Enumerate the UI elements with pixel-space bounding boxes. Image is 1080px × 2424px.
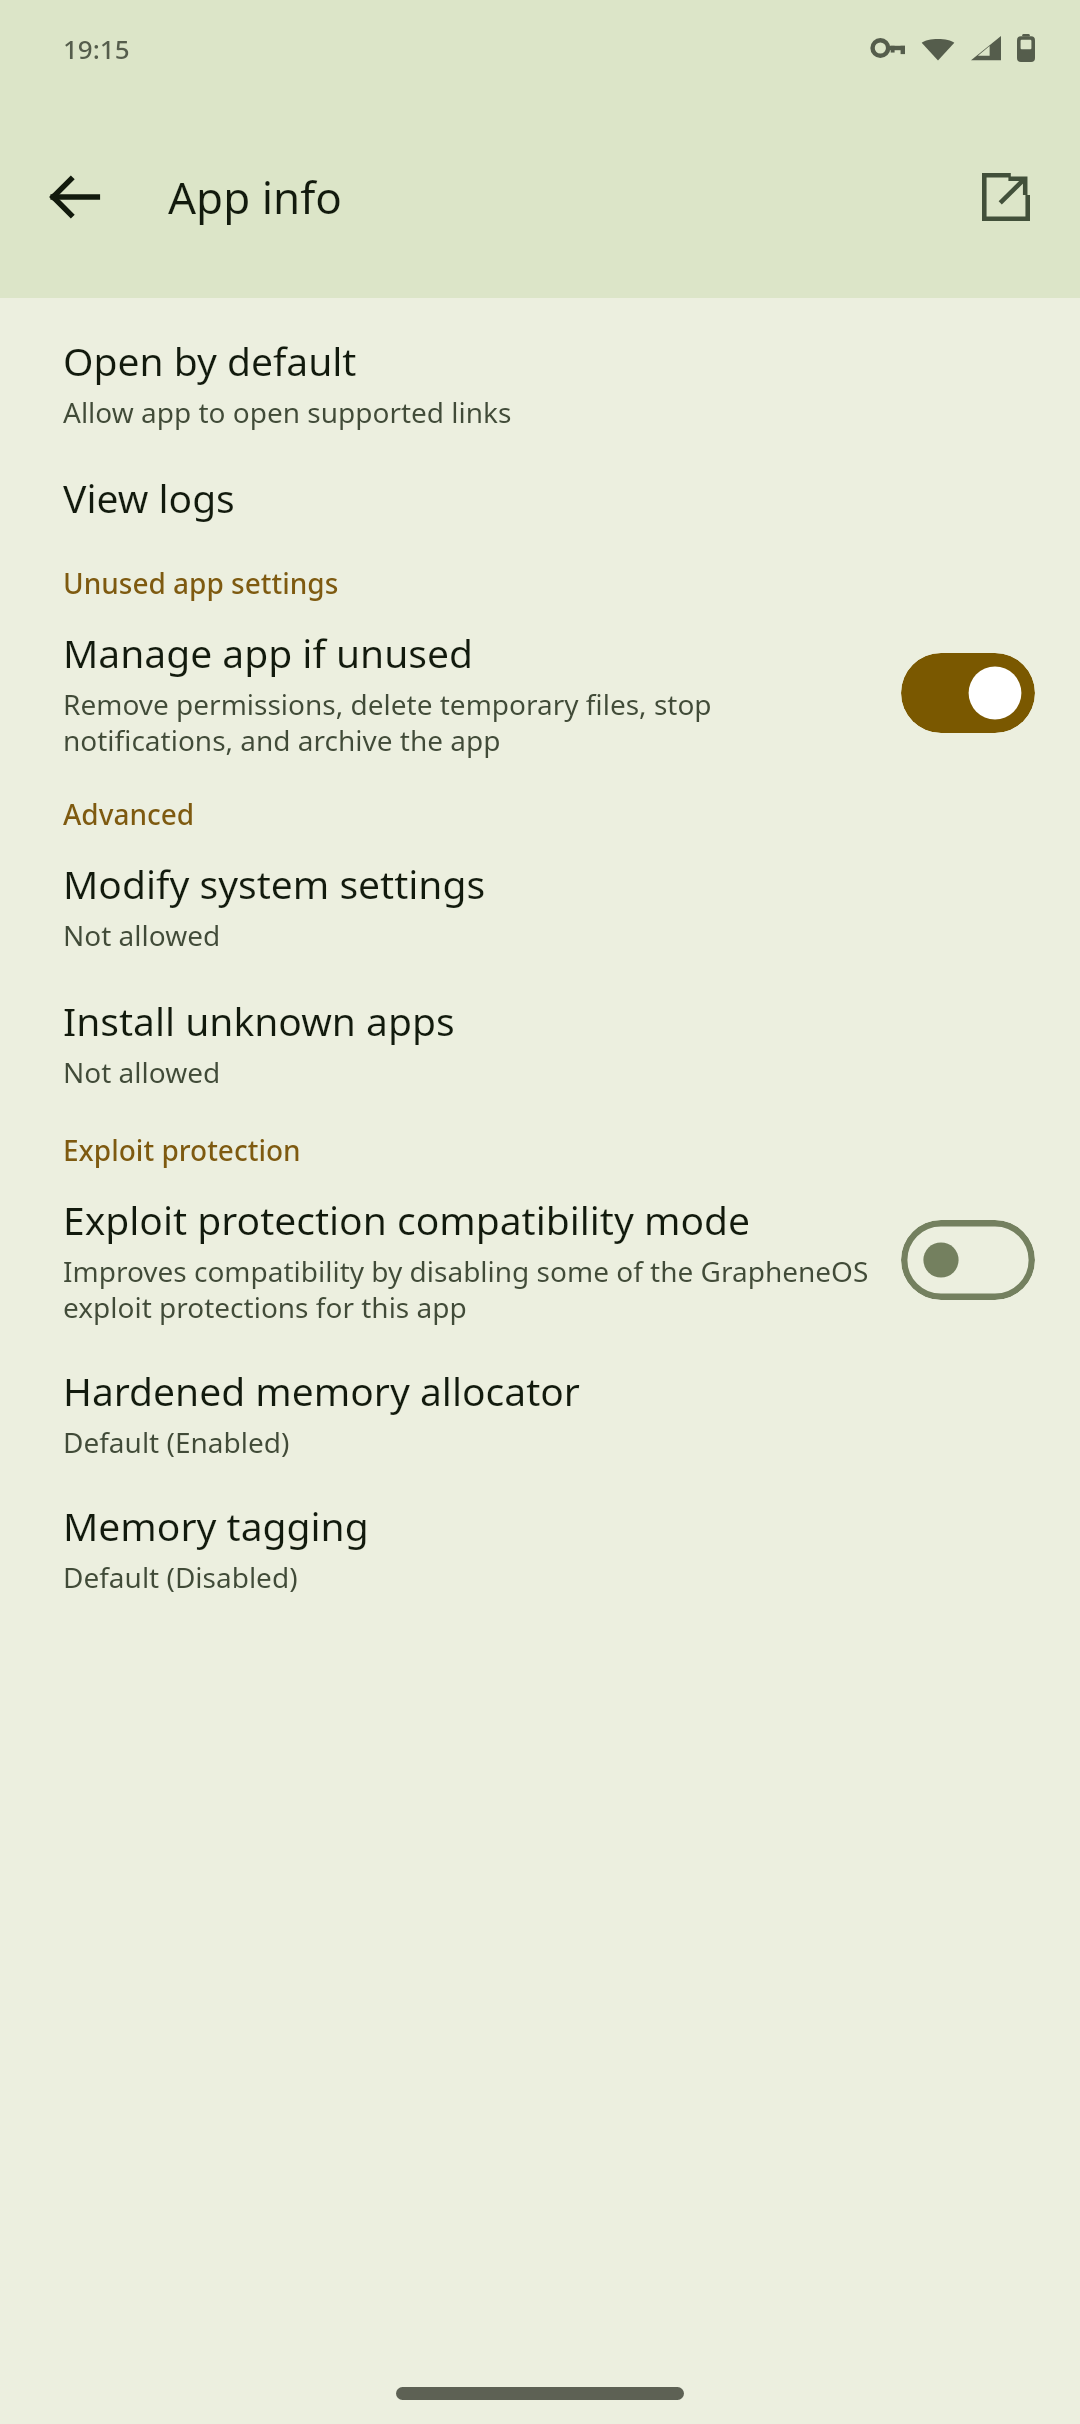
- button[interactable]: Toggle on: [901, 653, 1035, 733]
- button[interactable]: Open in new: [958, 149, 1054, 245]
- button[interactable]: Install unknown apps: [0, 988, 1080, 1097]
- staticText: Not allowed: [63, 1053, 221, 1091]
- staticText: App info: [168, 167, 342, 227]
- staticText: Advanced: [63, 795, 195, 833]
- staticText: Default (Disabled): [63, 1558, 298, 1596]
- button[interactable]: Toggle off: [901, 1220, 1035, 1300]
- button[interactable]: Modify system settings: [0, 851, 1080, 960]
- button[interactable]: Exploit protection compatibility mode: [0, 1187, 1080, 1332]
- staticText: Default (Enabled): [63, 1423, 290, 1461]
- staticText: Exploit protection: [63, 1131, 301, 1169]
- staticText: Improves compatibility by disabling some…: [63, 1252, 877, 1326]
- staticText: Install unknown apps: [63, 994, 455, 1047]
- button[interactable]: Open by default: [0, 328, 1080, 437]
- staticText: Remove permissions, delete temporary fil…: [63, 685, 877, 759]
- button[interactable]: Manage app if unused: [0, 620, 1080, 765]
- staticText: Exploit protection compatibility mode: [63, 1193, 751, 1246]
- staticText: Hardened memory allocator: [63, 1364, 580, 1417]
- button[interactable]: Hardened memory allocator: [0, 1358, 1080, 1467]
- staticText: Open by default: [63, 334, 357, 387]
- button[interactable]: Back: [27, 149, 123, 245]
- staticText: Unused app settings: [63, 564, 339, 602]
- staticText: Modify system settings: [63, 857, 486, 910]
- staticText: Allow app to open supported links: [63, 393, 512, 431]
- button[interactable]: Memory tagging: [0, 1493, 1080, 1602]
- staticText: Memory tagging: [63, 1499, 369, 1552]
- staticText: 19:15: [63, 31, 130, 66]
- staticText: Not allowed: [63, 916, 221, 954]
- staticText: Manage app if unused: [63, 626, 473, 679]
- staticText: View logs: [63, 471, 235, 524]
- button[interactable]: View logs: [0, 465, 1080, 530]
